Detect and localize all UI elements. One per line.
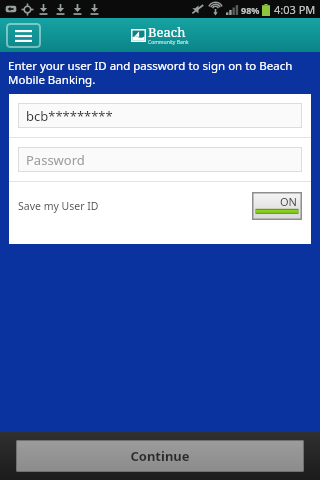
staticText: Password: [26, 151, 85, 169]
button[interactable]: Password: [18, 147, 302, 172]
button[interactable]: Menu: [6, 23, 41, 48]
button[interactable]: Save my User ID, on: [252, 192, 302, 220]
staticText: 98%: [241, 4, 260, 16]
staticText: ON: [280, 194, 297, 209]
staticText: Save my User ID: [18, 199, 99, 213]
staticText: 4:03 PM: [274, 2, 316, 17]
button[interactable]: Save my User ID: [9, 182, 311, 230]
staticText: bcb*********: [26, 107, 113, 125]
staticText: Beach: [148, 23, 186, 41]
button[interactable]: bcb*********: [18, 103, 302, 128]
staticText: Community Bank: [148, 39, 189, 46]
button[interactable]: Continue: [16, 440, 304, 472]
staticText: Continue: [130, 447, 190, 465]
staticText: Enter your user ID and password to sign …: [8, 58, 312, 87]
